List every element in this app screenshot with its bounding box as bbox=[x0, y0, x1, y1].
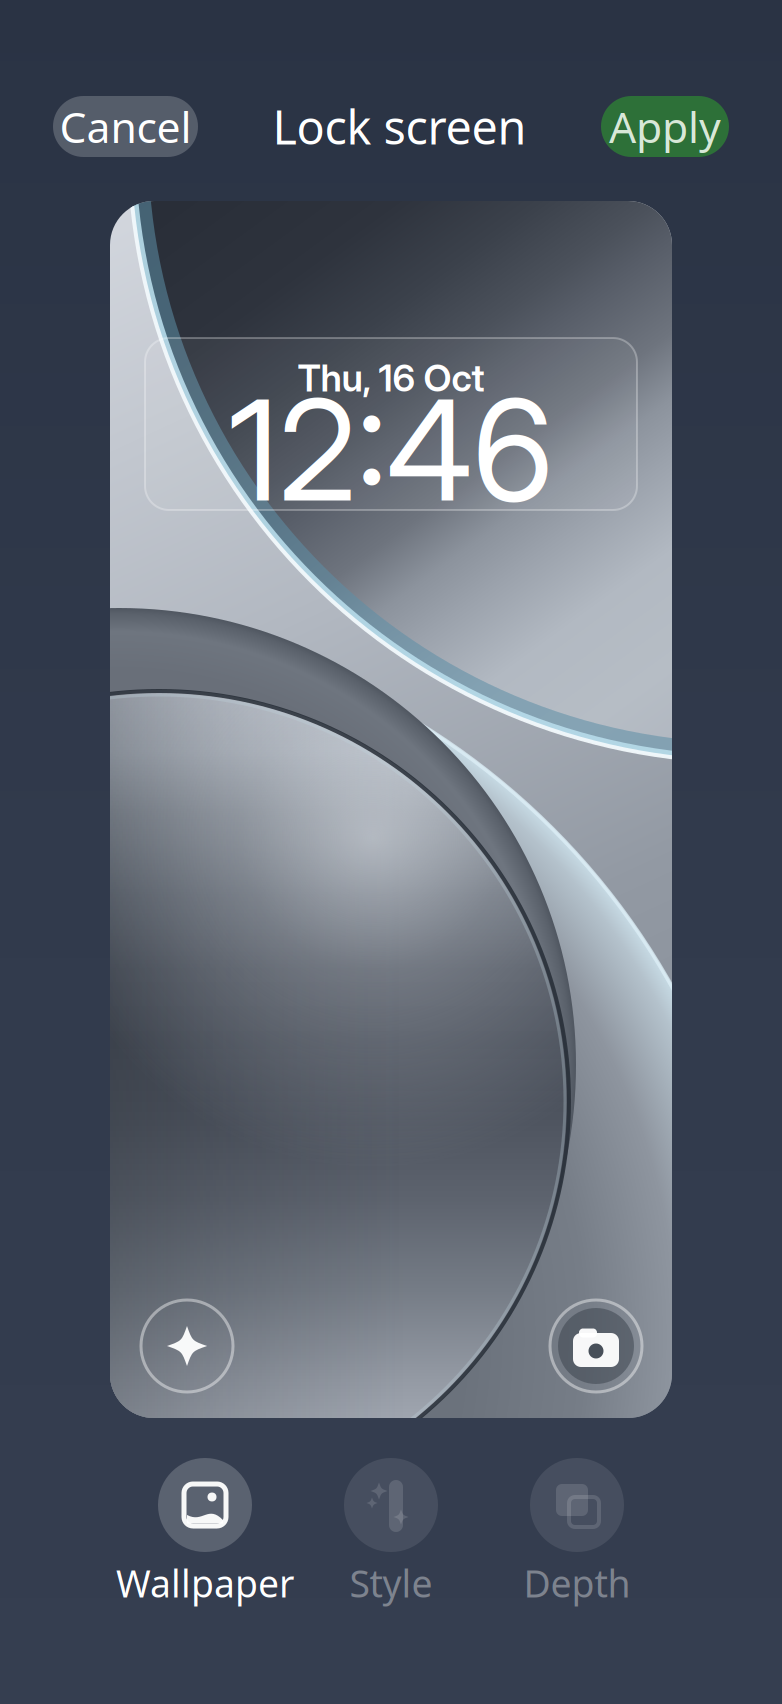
button[interactable]: Apply bbox=[601, 96, 729, 157]
button[interactable]: Cancel bbox=[53, 96, 198, 157]
button[interactable]: Depth bbox=[484, 1458, 670, 1614]
staticText: Wallpaper bbox=[116, 1558, 294, 1608]
staticText: 12:46 bbox=[228, 366, 553, 534]
button[interactable]: Wallpaper bbox=[112, 1458, 298, 1614]
staticText: Thu, 16 Oct bbox=[297, 355, 484, 401]
staticText: Style bbox=[349, 1558, 432, 1608]
staticText: Depth bbox=[523, 1558, 630, 1608]
button[interactable]: Style bbox=[298, 1458, 484, 1614]
staticText: Cancel bbox=[59, 98, 191, 155]
staticText: Lock screen bbox=[272, 95, 526, 157]
staticText: Apply bbox=[609, 98, 721, 155]
